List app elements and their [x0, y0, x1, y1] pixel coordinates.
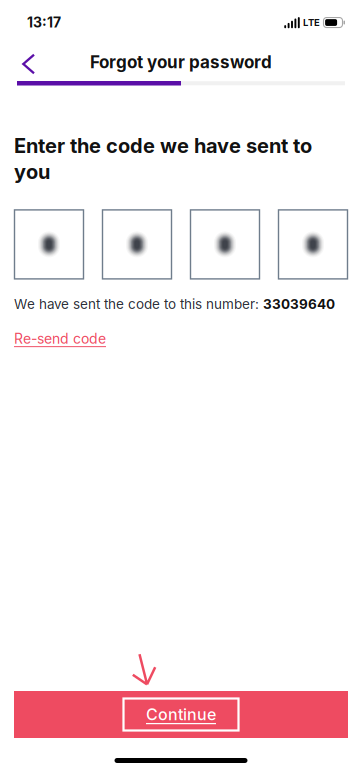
button[interactable]: Continue: [14, 691, 348, 738]
staticText: Re-send code: [14, 330, 106, 347]
staticText: LTE: [303, 17, 320, 28]
button[interactable]: Re-send code: [14, 325, 106, 352]
staticText: Enter the code we have sent to you: [14, 133, 312, 184]
staticText: 33039640: [263, 296, 335, 312]
staticText: Continue: [146, 705, 216, 724]
button[interactable]: Back: [0, 38, 51, 79]
staticText: 13:17: [27, 14, 61, 31]
staticText: Forgot your password: [90, 52, 272, 72]
staticText: We have sent the code to this number:: [14, 296, 263, 312]
